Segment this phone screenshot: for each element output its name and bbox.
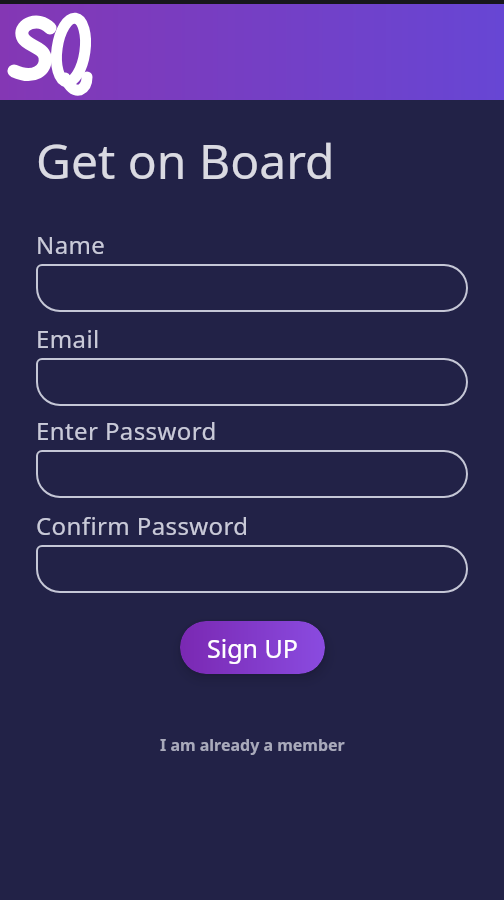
staticText: Email <box>36 322 100 355</box>
staticText: Confirm Password <box>36 509 249 542</box>
staticText: I am already a member <box>160 734 345 756</box>
staticText: Sign UP <box>207 631 298 665</box>
staticText: Enter Password <box>36 414 217 447</box>
staticText: Name <box>36 228 106 261</box>
staticText: Get on Board <box>36 128 335 193</box>
